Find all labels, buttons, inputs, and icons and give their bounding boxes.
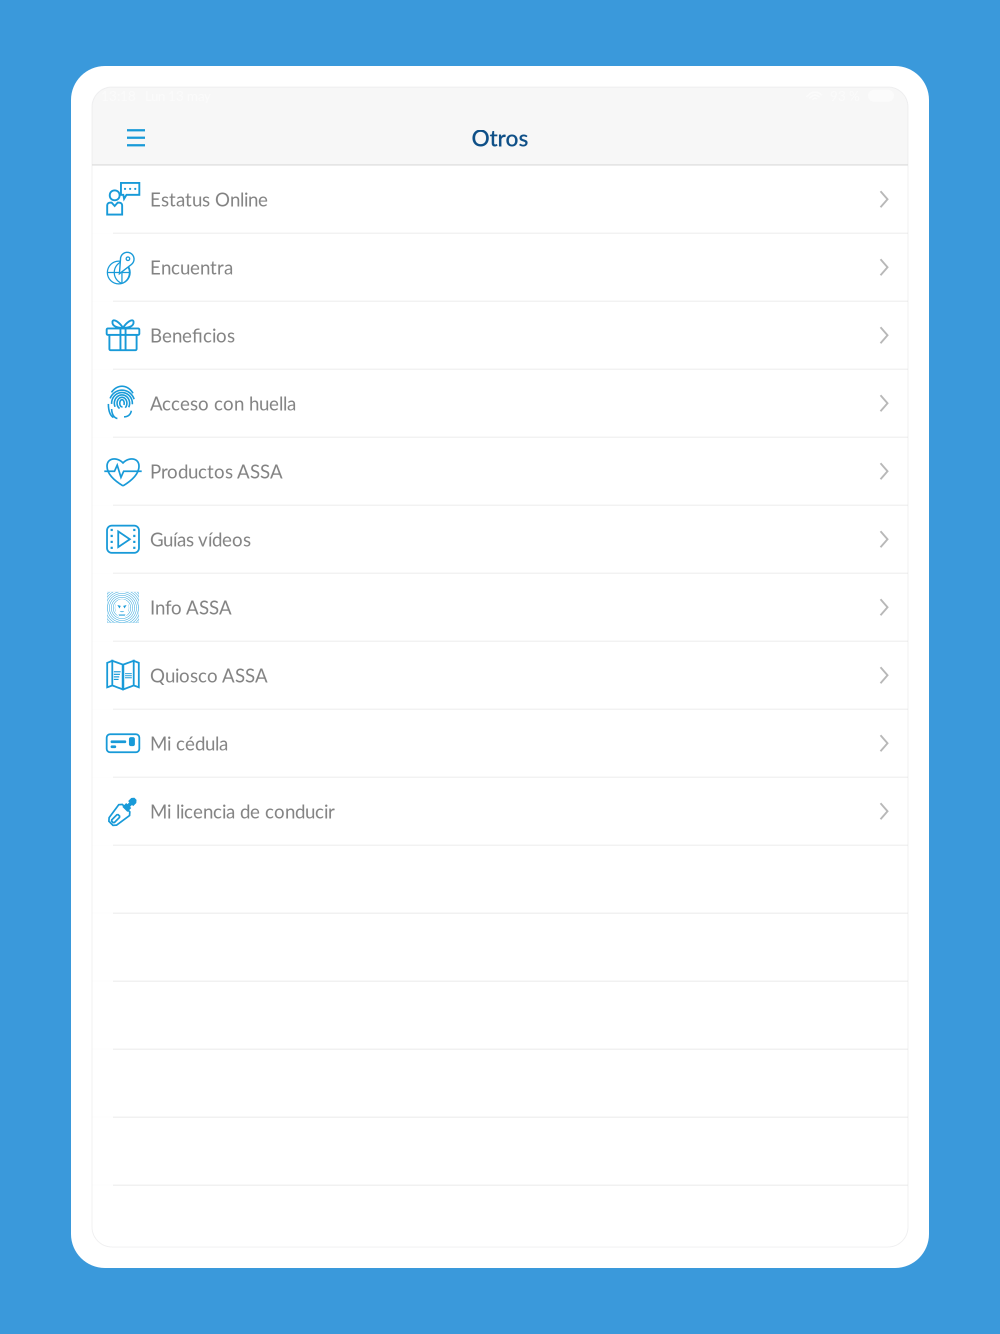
- staticText: Otros: [471, 124, 528, 151]
- button[interactable]: Mi licencia de conducir: [92, 778, 908, 846]
- staticText: Acceso con huella: [150, 392, 296, 414]
- staticText: Mi licencia de conducir: [150, 800, 335, 822]
- button[interactable]: Encuentra: [92, 234, 908, 302]
- staticText: Mi cédula: [150, 732, 228, 754]
- staticText: Beneficios: [150, 324, 235, 346]
- staticText: Encuentra: [150, 256, 233, 278]
- button[interactable]: Estatus Online: [92, 166, 908, 234]
- button[interactable]: Beneficios: [92, 302, 908, 370]
- button[interactable]: Info ASSA: [92, 574, 908, 642]
- button[interactable]: Quiosco ASSA: [92, 642, 908, 710]
- staticText: Guías vídeos: [150, 528, 251, 550]
- staticText: Quiosco ASSA: [150, 664, 268, 686]
- button[interactable]: Menu: [111, 114, 161, 161]
- button[interactable]: Mi cédula: [92, 710, 908, 778]
- staticText: Info ASSA: [150, 596, 232, 618]
- button[interactable]: Acceso con huella: [92, 370, 908, 438]
- button[interactable]: Productos ASSA: [92, 438, 908, 506]
- staticText: Productos ASSA: [150, 460, 283, 482]
- staticText: Estatus Online: [150, 188, 268, 210]
- button[interactable]: Guías vídeos: [92, 506, 908, 574]
